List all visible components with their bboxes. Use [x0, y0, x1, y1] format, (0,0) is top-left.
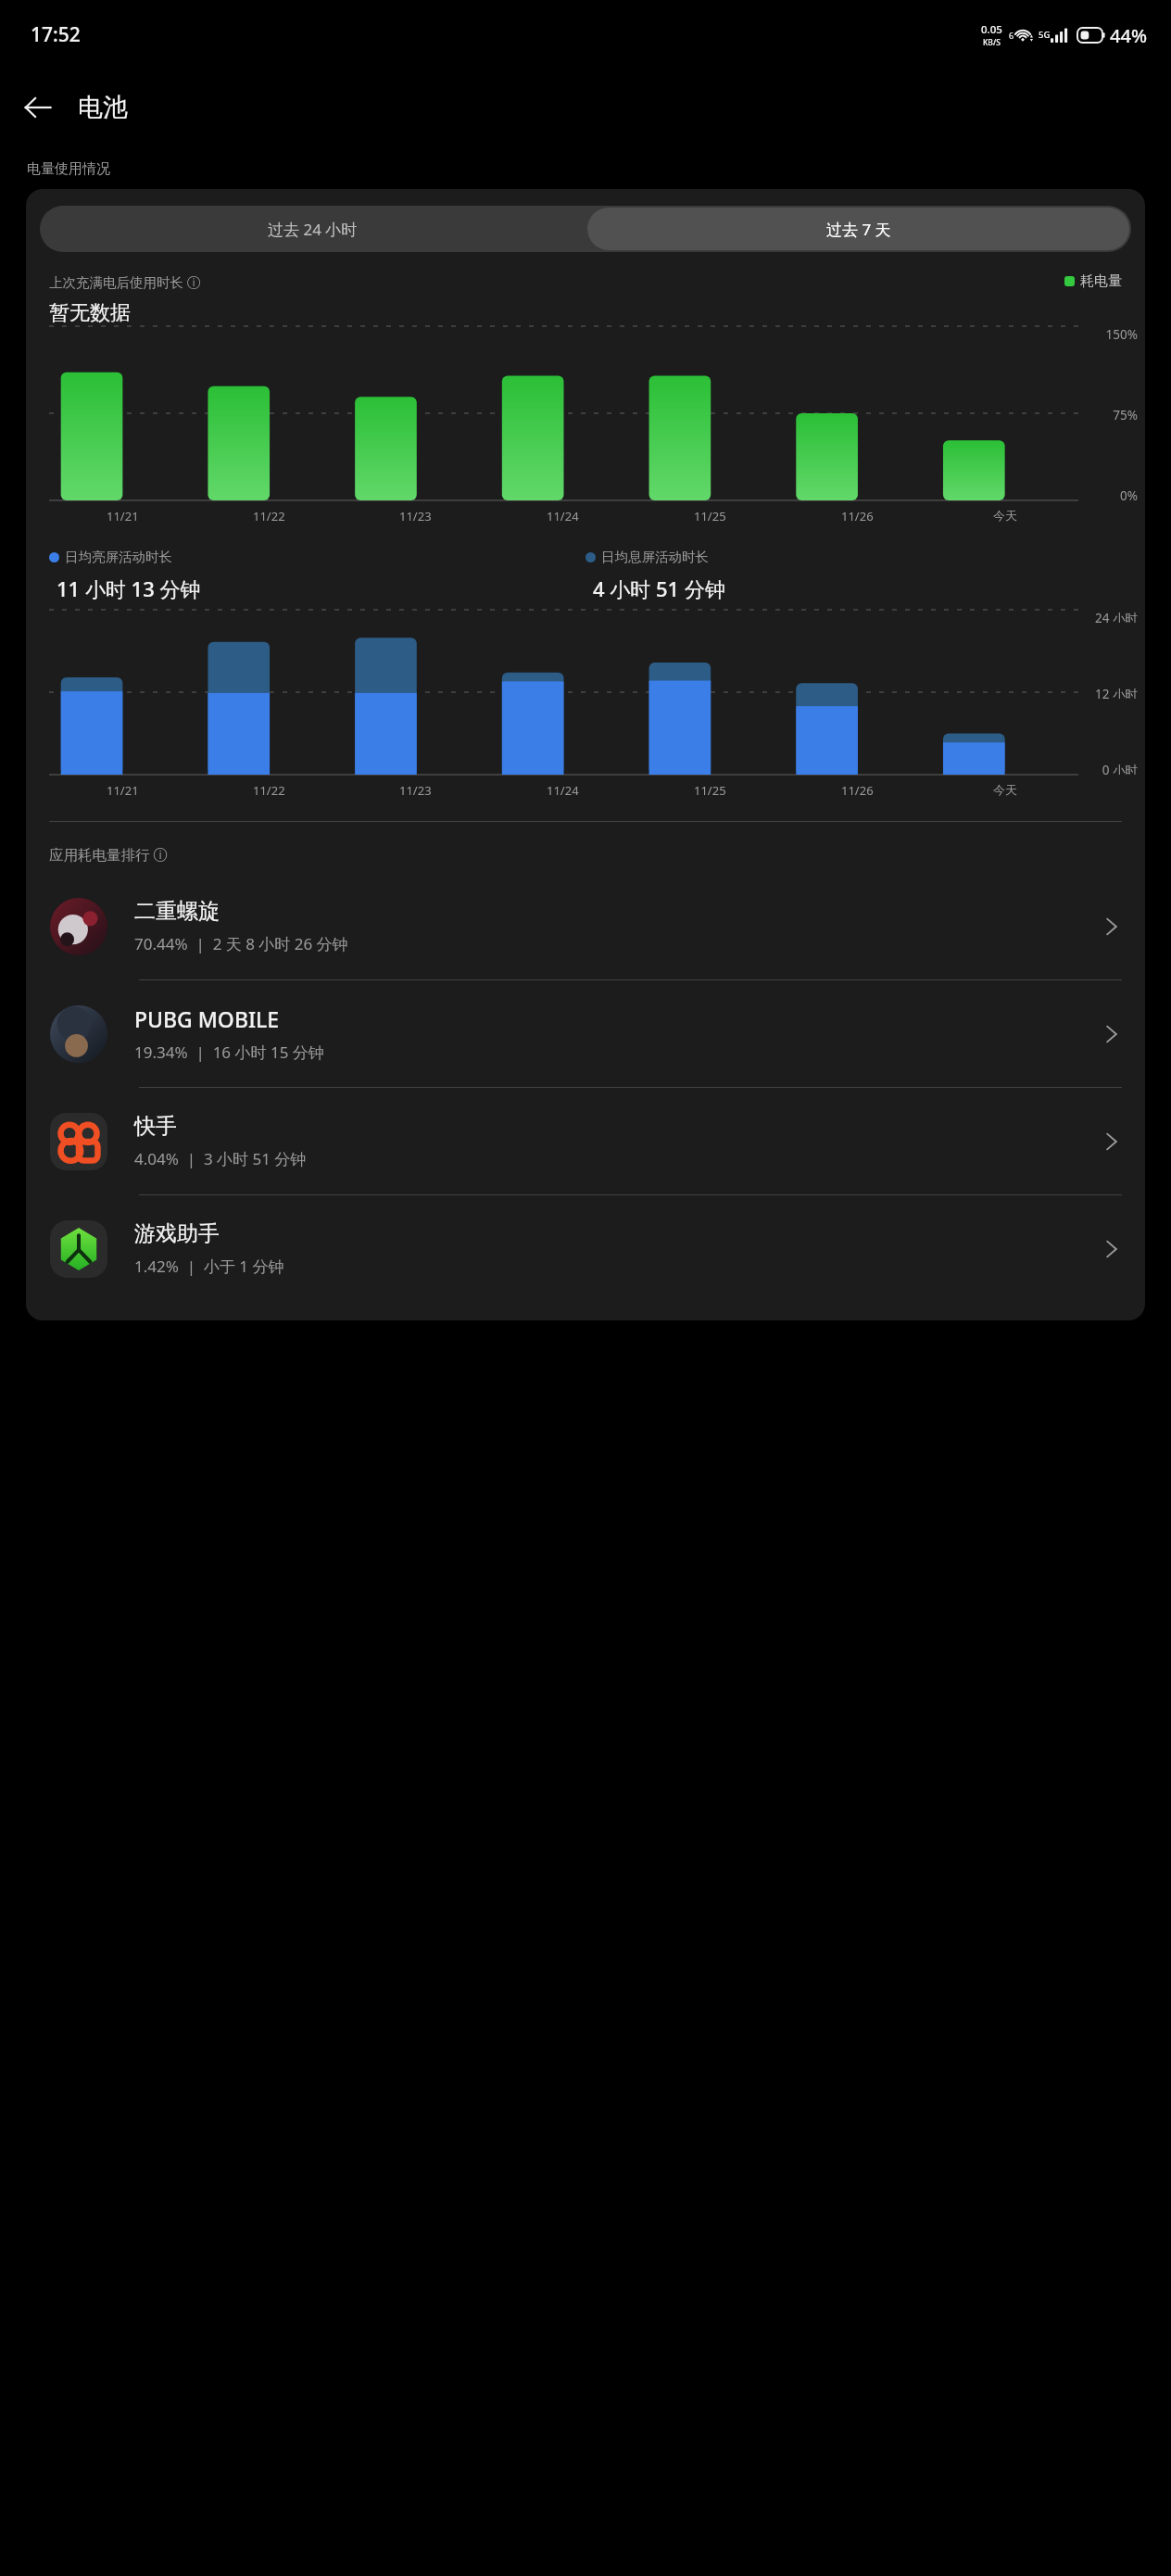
staticText: 过去 24 小时 [268, 219, 358, 240]
staticText: 上次充满电后使用时长 ⓘ [49, 272, 201, 291]
button[interactable]: 游戏助手 [26, 1195, 1145, 1302]
staticText: 11/22 [253, 782, 285, 799]
staticText: 44% [1110, 23, 1147, 48]
button[interactable]: 二重螺旋 [26, 873, 1145, 979]
staticText: 11/22 [253, 508, 285, 524]
button[interactable]: Back [13, 82, 63, 133]
staticText: 0 小时 [1102, 762, 1138, 775]
staticText: 5G [1039, 29, 1051, 41]
staticText: KB/S [983, 37, 1001, 48]
staticText: 电量使用情况 [27, 160, 110, 178]
staticText: 24 小时 [1095, 610, 1138, 623]
staticText: 75% [1113, 407, 1138, 420]
staticText: 今天 [993, 508, 1017, 523]
staticText: 11/26 [841, 508, 874, 524]
staticText: 今天 [993, 782, 1017, 797]
staticText: 应用耗电量排行 ⓘ [49, 844, 169, 864]
staticText: 19.34% | 16 小时 15 分钟 [134, 1042, 324, 1063]
button[interactable]: PUBG MOBILE [26, 980, 1145, 1087]
staticText: 12 小时 [1095, 686, 1138, 699]
staticText: 4 小时 51 分钟 [593, 575, 725, 602]
staticText: 11/21 [107, 508, 139, 524]
staticText: 11 小时 13 分钟 [57, 575, 201, 602]
staticText: 二重螺旋 [134, 898, 220, 925]
staticText: 17:52 [31, 21, 81, 48]
staticText: 11/24 [547, 508, 579, 524]
staticText: 6 [1009, 30, 1014, 41]
staticText: 快手 [134, 1113, 177, 1140]
staticText: 11/24 [547, 782, 579, 799]
staticText: 70.44% | 2 天 8 小时 26 分钟 [134, 933, 348, 954]
staticText: 1.42% | 小于 1 分钟 [134, 1256, 284, 1277]
staticText: 11/26 [841, 782, 874, 799]
button[interactable]: 过去 7 天 [587, 208, 1129, 250]
staticText: PUBG MOBILE [134, 1004, 280, 1033]
staticText: 耗电量 [1080, 272, 1122, 290]
staticText: 11/23 [399, 508, 432, 524]
staticText: 日均息屏活动时长 [601, 549, 709, 565]
staticText: 0.05 [981, 22, 1002, 37]
staticText: 11/25 [694, 782, 726, 799]
staticText: 电池 [78, 92, 128, 123]
staticText: 150% [1105, 326, 1138, 339]
staticText: 游戏助手 [134, 1220, 220, 1247]
staticText: 11/25 [694, 508, 726, 524]
staticText: 11/21 [107, 782, 139, 799]
staticText: 4.04% | 3 小时 51 分钟 [134, 1148, 307, 1169]
button[interactable]: 快手 [26, 1088, 1145, 1194]
staticText: 日均亮屏活动时长 [65, 549, 172, 565]
button[interactable]: 过去 24 小时 [40, 206, 585, 252]
staticText: 11/23 [399, 782, 432, 799]
staticText: 暂无数据 [49, 300, 131, 326]
staticText: 过去 7 天 [826, 219, 891, 240]
staticText: 0% [1120, 487, 1138, 500]
